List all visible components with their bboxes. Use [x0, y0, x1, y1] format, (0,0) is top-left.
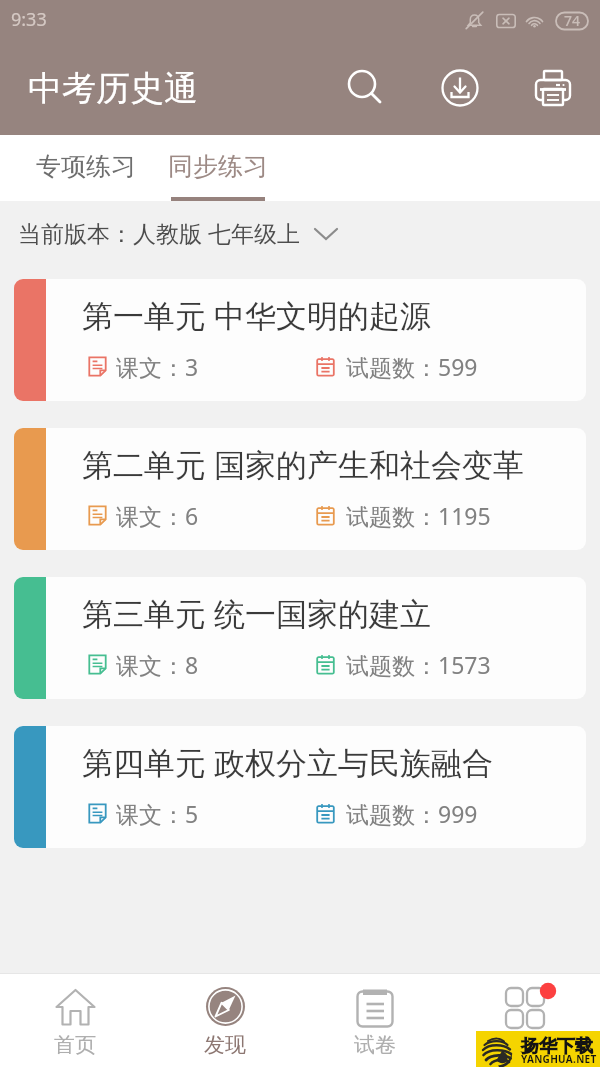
button[interactable]: 发现	[150, 973, 300, 1067]
staticText: 当前版本：人教版 七年级上	[18, 217, 300, 248]
staticText: 课文：3	[116, 351, 199, 382]
staticText: 首页	[54, 1032, 96, 1058]
staticText: YANGHUA.NET	[521, 1052, 597, 1066]
button[interactable]: 第二单元 国家的产生和社会变革	[14, 428, 586, 550]
staticText: 第二单元 国家的产生和社会变革	[82, 443, 525, 485]
staticText: 试题数：1573	[346, 649, 491, 680]
button[interactable]: Print	[506, 41, 600, 135]
button[interactable]: 第一单元 中华文明的起源	[14, 279, 586, 401]
staticText: 扬华下载	[521, 1035, 593, 1058]
staticText: 课文：5	[116, 798, 199, 829]
staticText: 课文：6	[116, 500, 199, 531]
button[interactable]: 首页	[0, 973, 150, 1067]
staticText: 9:33	[11, 7, 47, 32]
button[interactable]: Download	[413, 41, 507, 135]
staticText: 试卷	[354, 1032, 396, 1058]
staticText: 第四单元 政权分立与民族融合	[82, 741, 494, 783]
button[interactable]: Search	[317, 41, 411, 135]
button[interactable]: 当前版本：人教版 七年级上	[0, 201, 600, 263]
staticText: 中考历史通	[28, 67, 198, 110]
button[interactable]: 试卷	[300, 973, 450, 1067]
button[interactable]: 专项练习	[20, 135, 152, 201]
staticText: 专项练习	[36, 151, 136, 182]
staticText: 试题数：999	[346, 798, 478, 829]
button[interactable]: 同步练习	[152, 135, 284, 201]
staticText: 同步练习	[168, 151, 268, 182]
staticText: 试题数：1195	[346, 500, 491, 531]
staticText: 第三单元 统一国家的建立	[82, 592, 432, 634]
button[interactable]: 第三单元 统一国家的建立	[14, 577, 586, 699]
button[interactable]: More apps	[450, 973, 600, 1067]
staticText: 发现	[204, 1032, 246, 1058]
staticText: 课文：8	[116, 649, 199, 680]
staticText: 74	[564, 11, 581, 30]
staticText: 第一单元 中华文明的起源	[82, 294, 432, 336]
button[interactable]: 第四单元 政权分立与民族融合	[14, 726, 586, 848]
staticText: 试题数：599	[346, 351, 478, 382]
